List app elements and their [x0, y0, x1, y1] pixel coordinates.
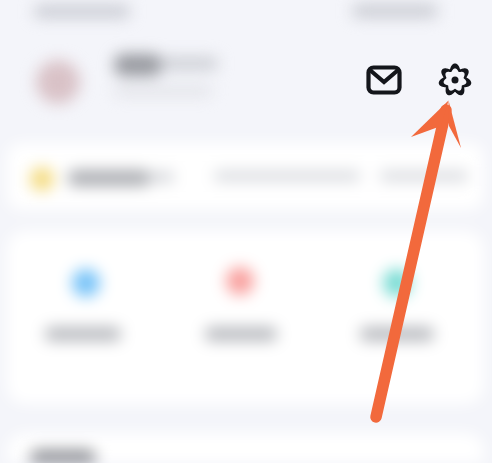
button[interactable]: Settings — [435, 60, 475, 100]
button[interactable]: Mail — [366, 62, 402, 98]
